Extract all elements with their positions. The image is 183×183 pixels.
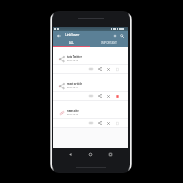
staticText: IMPORTANT (101, 41, 117, 45)
button[interactable]: Add link (111, 32, 118, 39)
button[interactable]: Open link (86, 65, 95, 73)
button[interactable]: Back (55, 32, 62, 39)
button[interactable]: Delete (104, 65, 113, 73)
staticText: news site (67, 109, 79, 112)
button[interactable]: Mark important (113, 65, 122, 73)
button[interactable]: Delete (104, 92, 113, 100)
button[interactable]: Share (95, 119, 104, 127)
button[interactable]: IMPORTANT (90, 39, 128, 46)
button[interactable]: Search (118, 32, 125, 39)
button[interactable]: Delete (104, 119, 113, 127)
button[interactable]: Share (95, 65, 104, 73)
button[interactable]: Mark important (113, 92, 122, 100)
staticText: react article (67, 82, 83, 85)
button[interactable]: react article (53, 74, 128, 100)
staticText: tuts Twitter (67, 55, 82, 58)
button[interactable]: news site (53, 101, 128, 127)
button[interactable]: Mark important (113, 119, 122, 127)
staticText: 2017-12-10 (67, 113, 78, 116)
staticText: 2017-12-13 (67, 59, 78, 62)
button[interactable]: Open link (86, 92, 95, 100)
button[interactable]: Share (95, 92, 104, 100)
staticText: LinkSaver (65, 33, 80, 37)
button[interactable]: ALL (53, 39, 90, 46)
staticText: ALL (69, 41, 74, 45)
button[interactable]: tuts Twitter (53, 47, 128, 73)
button[interactable]: Open link (86, 119, 95, 127)
staticText: 2017-12-11 (67, 86, 78, 89)
